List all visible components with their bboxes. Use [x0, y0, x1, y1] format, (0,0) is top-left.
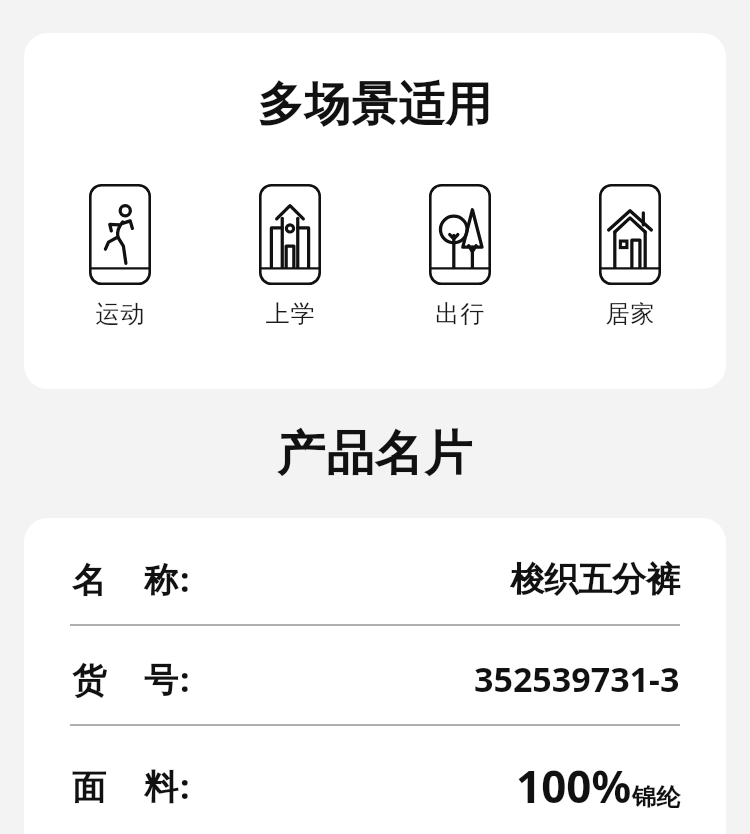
- staticText: 面 料:: [72, 763, 192, 809]
- staticText: 多场景适用: [24, 76, 726, 134]
- button[interactable]: 名 称:: [24, 518, 726, 624]
- staticText: 运动: [95, 299, 145, 329]
- button[interactable]: 出行: [429, 184, 491, 329]
- staticText: 352539731-3: [474, 656, 680, 702]
- staticText: 产品名片: [0, 424, 750, 484]
- staticText: 名 称:: [72, 556, 192, 602]
- staticText: 锦纶: [632, 782, 680, 812]
- button[interactable]: 上学: [259, 184, 321, 329]
- button[interactable]: 运动: [89, 184, 151, 329]
- button[interactable]: 面 料:: [24, 726, 726, 834]
- staticText: 梭织五分裤: [510, 558, 680, 601]
- button[interactable]: 居家: [599, 184, 661, 329]
- staticText: 居家: [605, 299, 655, 329]
- staticText: 上学: [265, 299, 315, 329]
- staticText: 货 号:: [72, 656, 192, 702]
- staticText: 出行: [435, 299, 485, 329]
- button[interactable]: 货 号:: [24, 626, 726, 724]
- staticText: 100%: [516, 756, 632, 816]
